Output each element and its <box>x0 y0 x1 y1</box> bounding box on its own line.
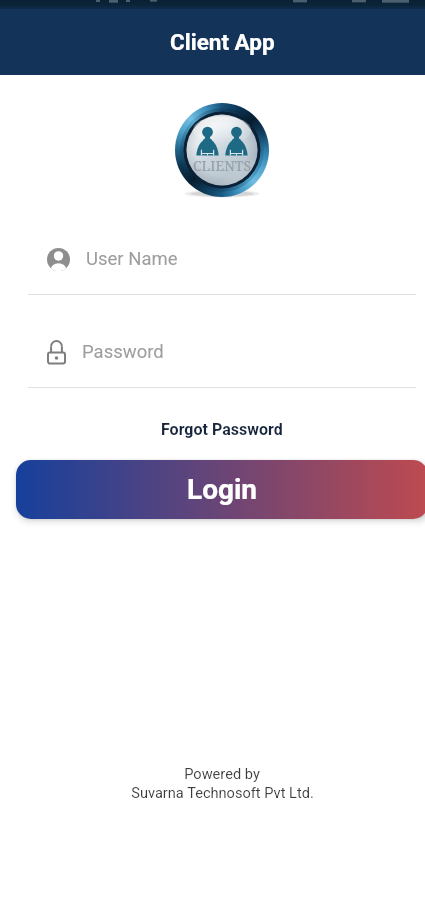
staticText: Forgot Password <box>161 420 283 439</box>
button[interactable]: Login <box>16 460 425 519</box>
staticText: Client App <box>170 29 275 55</box>
staticText: Powered by <box>184 765 260 782</box>
button[interactable]: User Name <box>47 244 425 274</box>
staticText: Suvarna Technosoft Pvt Ltd. <box>131 784 314 801</box>
staticText: CLIENTS <box>193 156 252 175</box>
staticText: User Name <box>86 248 178 270</box>
staticText: Login <box>187 473 258 506</box>
button[interactable]: Password <box>47 337 425 367</box>
staticText: Password <box>82 341 164 363</box>
button[interactable]: Forgot Password <box>153 417 291 442</box>
